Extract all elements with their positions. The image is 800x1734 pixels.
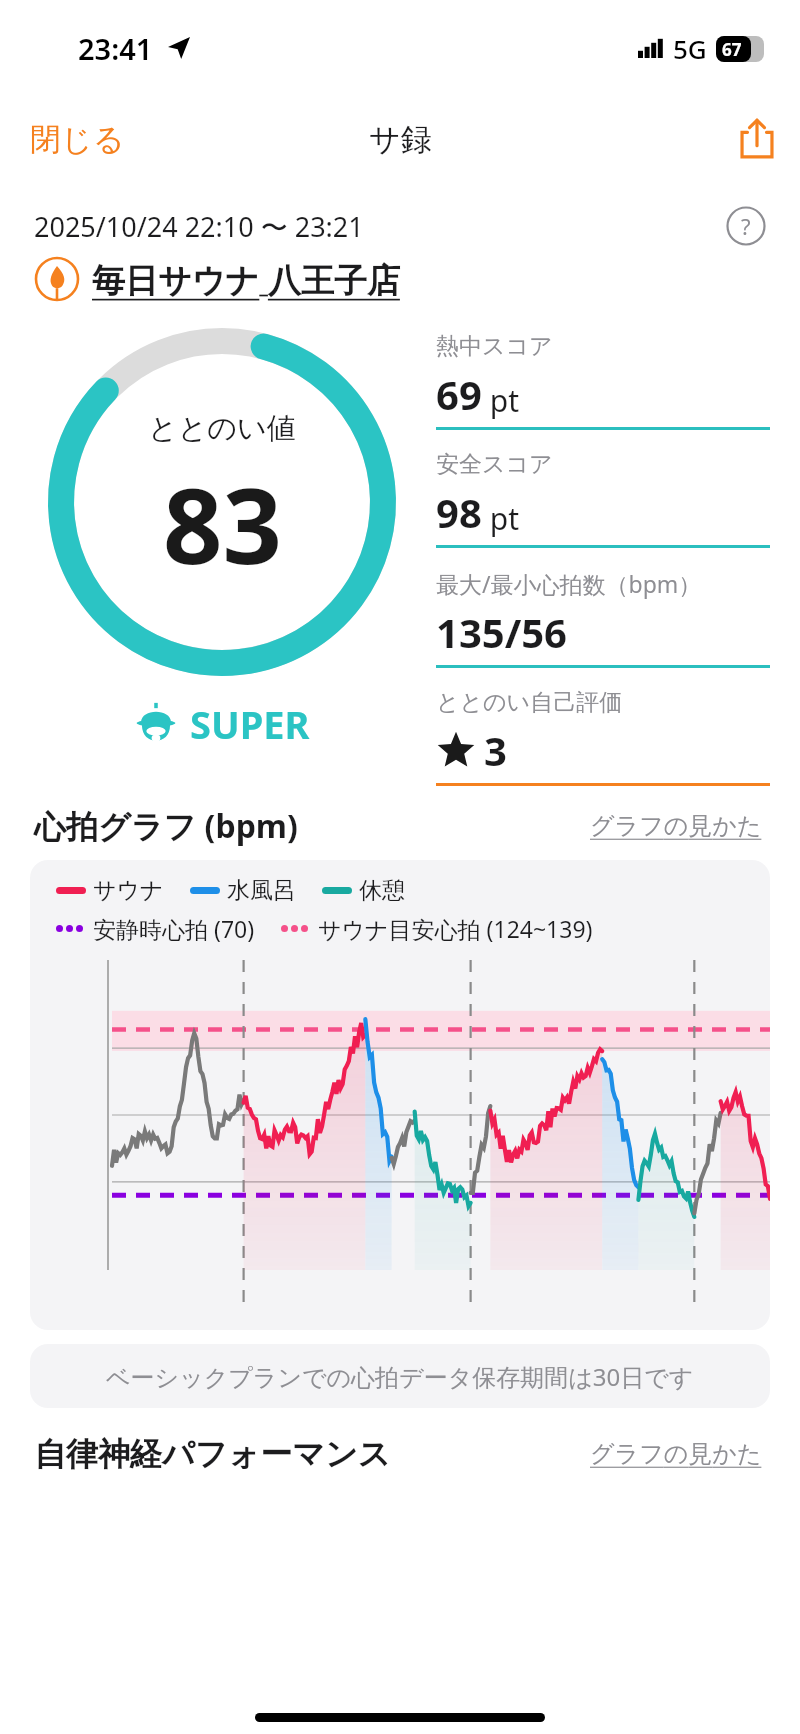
staticText: 最大/最小心拍数（bpm）	[436, 568, 702, 599]
staticText: ベーシックプランでの心拍データ保存期間は30日です	[106, 1360, 694, 1393]
staticText: 2025/10/24 22:10 〜 23:21	[34, 208, 364, 245]
staticText: 安全スコア	[436, 450, 553, 479]
staticText: ととのい自己評価	[436, 688, 623, 717]
staticText: グラフの見かた	[590, 1439, 762, 1469]
staticText: pt	[482, 498, 520, 539]
staticText: 135/56	[436, 605, 567, 659]
button[interactable]: Share	[714, 108, 800, 170]
button[interactable]: Help	[726, 206, 766, 246]
staticText: ?	[741, 211, 751, 241]
staticText: 熱中スコア	[436, 332, 553, 361]
staticText: 水風呂	[227, 876, 296, 905]
staticText: 83	[163, 453, 282, 595]
staticText: サウナ	[93, 876, 164, 905]
staticText: 自律神経パフォーマンス	[34, 1434, 391, 1474]
staticText: グラフの見かた	[590, 811, 762, 841]
button[interactable]: 毎日サウナ 八王子店	[34, 256, 766, 302]
staticText: 67	[722, 38, 742, 61]
staticText: 閉じる	[30, 120, 125, 159]
staticText: 安静時心拍 (70)	[93, 913, 255, 944]
staticText: 休憩	[359, 876, 405, 905]
staticText: ととのい値	[148, 410, 296, 447]
staticText: 3	[484, 723, 507, 777]
button[interactable]: グラフの見かた	[586, 1435, 766, 1473]
staticText: 心拍グラフ (bpm)	[34, 804, 298, 848]
staticText: 23:41	[78, 29, 153, 68]
staticText: サ録	[369, 120, 432, 159]
staticText: SUPER	[190, 698, 310, 750]
staticText: 5G	[673, 31, 707, 66]
staticText: 98	[436, 485, 482, 539]
staticText: pt	[482, 380, 520, 421]
staticText: 毎日サウナ 八王子店	[92, 257, 400, 302]
staticText: 69	[436, 367, 482, 421]
button[interactable]: 閉じる	[0, 108, 155, 171]
staticText: サウナ目安心拍 (124~139)	[318, 913, 593, 944]
button[interactable]: グラフの見かた	[586, 807, 766, 845]
